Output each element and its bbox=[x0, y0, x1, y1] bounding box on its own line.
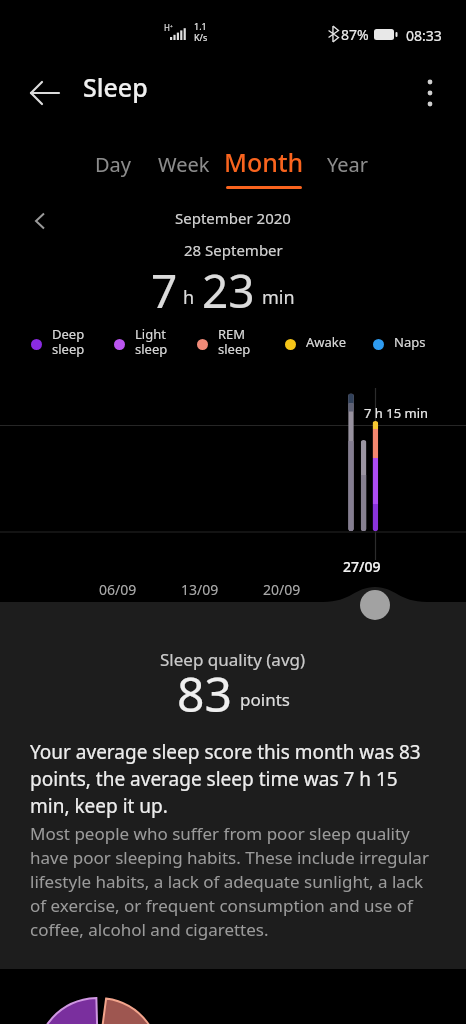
staticText: 23 bbox=[202, 259, 255, 322]
staticText: Awake bbox=[306, 333, 347, 351]
staticText: 06/09 bbox=[99, 580, 137, 599]
button[interactable] bbox=[20, 75, 70, 111]
staticText: 87% bbox=[341, 25, 369, 44]
staticText: H⁺ bbox=[164, 22, 173, 33]
staticText: Year bbox=[327, 151, 369, 178]
staticText: 08:33 bbox=[406, 26, 442, 45]
button[interactable] bbox=[157, 145, 211, 185]
staticText: Deep sleep bbox=[52, 325, 85, 358]
staticText: Most people who suffer from poor sleep q… bbox=[30, 822, 429, 941]
staticText: 27/09 bbox=[343, 557, 381, 576]
staticText: Your average sleep score this month was … bbox=[30, 739, 421, 819]
staticText: K/s bbox=[194, 31, 208, 43]
staticText: 28 September bbox=[184, 240, 283, 260]
staticText: Sleep bbox=[83, 70, 148, 104]
staticText: Week bbox=[158, 151, 210, 178]
staticText: 7 h 15 min bbox=[364, 404, 429, 422]
staticText: Light sleep bbox=[135, 325, 168, 358]
staticText: 7 bbox=[151, 259, 178, 322]
button[interactable] bbox=[230, 145, 298, 185]
staticText: h bbox=[183, 285, 195, 310]
button[interactable] bbox=[410, 73, 450, 113]
staticText: September 2020 bbox=[175, 208, 291, 228]
button[interactable] bbox=[88, 145, 138, 185]
staticText: 20/09 bbox=[263, 580, 301, 599]
button[interactable] bbox=[323, 145, 373, 185]
staticText: 13/09 bbox=[181, 580, 219, 599]
staticText: REM sleep bbox=[218, 325, 251, 358]
staticText: 83 bbox=[177, 661, 232, 726]
staticText: min bbox=[262, 285, 295, 310]
staticText: 1.1 bbox=[194, 20, 207, 32]
staticText: Day bbox=[95, 151, 132, 178]
button[interactable] bbox=[34, 212, 46, 230]
staticText: points bbox=[240, 688, 290, 711]
staticText: Sleep quality (avg) bbox=[160, 648, 306, 671]
staticText: Naps bbox=[394, 333, 426, 351]
button[interactable] bbox=[360, 590, 390, 620]
staticText: Month bbox=[224, 145, 304, 179]
